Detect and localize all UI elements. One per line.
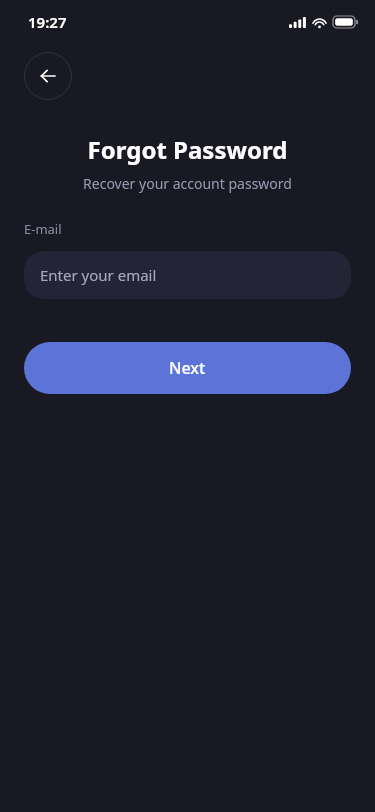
- staticText: Next: [169, 357, 206, 379]
- staticText: Enter your email: [40, 265, 157, 285]
- staticText: 19:27: [28, 12, 67, 32]
- staticText: Forgot Password: [0, 133, 375, 166]
- staticText: Recover your account password: [0, 174, 375, 193]
- staticText: E-mail: [24, 220, 62, 238]
- button[interactable]: Next: [24, 342, 351, 394]
- button[interactable]: Back: [24, 52, 72, 100]
- button[interactable]: Enter your email: [24, 251, 351, 299]
